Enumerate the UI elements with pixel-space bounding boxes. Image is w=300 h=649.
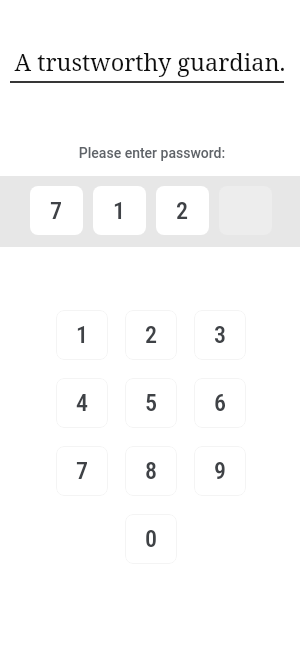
button[interactable]: 8 (125, 446, 177, 496)
button[interactable]: 7 (56, 446, 108, 496)
button[interactable]: 2 (156, 186, 209, 235)
button[interactable]: 4 (56, 378, 108, 428)
staticText: 7 (50, 197, 63, 225)
staticText: 2 (145, 321, 158, 349)
staticText: 1 (76, 321, 89, 349)
staticText: 2 (176, 197, 189, 225)
staticText: 4 (76, 389, 89, 417)
staticText: 3 (214, 321, 227, 349)
staticText: 1 (113, 197, 126, 225)
staticText: Please enter password: (2, 145, 300, 161)
staticText: 5 (145, 389, 158, 417)
staticText: 7 (76, 457, 89, 485)
button[interactable]: 7 (30, 186, 83, 235)
button[interactable]: 9 (194, 446, 246, 496)
staticText: 9 (214, 457, 227, 485)
staticText: 0 (145, 525, 158, 553)
button[interactable]: 3 (194, 310, 246, 360)
staticText: 6 (214, 389, 227, 417)
staticText: 8 (145, 457, 158, 485)
button[interactable]: 1 (93, 186, 146, 235)
button[interactable]: 2 (125, 310, 177, 360)
button[interactable]: 6 (194, 378, 246, 428)
staticText: A trustworthy guardian. (0, 46, 300, 78)
button[interactable]: 0 (125, 514, 177, 564)
button[interactable]: 5 (125, 378, 177, 428)
button[interactable]: 1 (56, 310, 108, 360)
